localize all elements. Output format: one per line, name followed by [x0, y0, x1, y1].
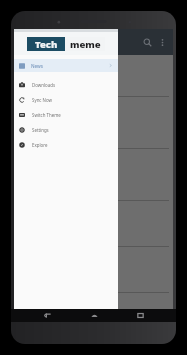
staticText: News [31, 63, 44, 69]
staticText: e Interfets of a Trump [18, 87, 61, 93]
button[interactable]: ed tool to scale do to create an (The Ve… [14, 153, 173, 205]
button[interactable]: nal to force you es from the FCC's [14, 55, 173, 101]
button[interactable]: Switch Theme [14, 107, 118, 122]
staticText: ked as Thunderbolt [18, 139, 57, 145]
staticText: Explore [32, 142, 48, 148]
button[interactable]: Back [36, 309, 58, 322]
button[interactable]: More options [155, 35, 169, 49]
button[interactable]: Home [83, 309, 105, 322]
button[interactable]: Explore [14, 137, 118, 152]
staticText: Sync Now [32, 97, 52, 103]
button[interactable]: News [14, 59, 118, 72]
staticText: meme [70, 38, 101, 51]
staticText: Tech [35, 38, 58, 51]
staticText: Switch Theme [32, 112, 61, 118]
button[interactable]: doesn't operate well ng connected Macs s… [14, 101, 173, 153]
staticText: ow hosts from the [18, 81, 54, 87]
button[interactable]: hird party ad tech s and show TV (Sarah … [14, 251, 173, 297]
staticText: Settings [32, 127, 49, 133]
button[interactable]: Recent apps [129, 309, 151, 322]
button[interactable]: ocial network with rs, available today [14, 205, 173, 251]
button[interactable]: Downloads [14, 77, 118, 92]
button[interactable]: Search [139, 34, 155, 50]
staticText: Downloads [32, 82, 55, 88]
staticText: hat 5K Change doesn't [18, 127, 63, 133]
staticText: doesn't operate well ng connected Macs s… [18, 105, 71, 125]
button[interactable]: Settings [14, 122, 118, 137]
button[interactable]: Sync Now [14, 92, 118, 107]
button[interactable]: Tech [27, 37, 105, 51]
staticText: nal to force you es from the FCC's [18, 59, 63, 73]
